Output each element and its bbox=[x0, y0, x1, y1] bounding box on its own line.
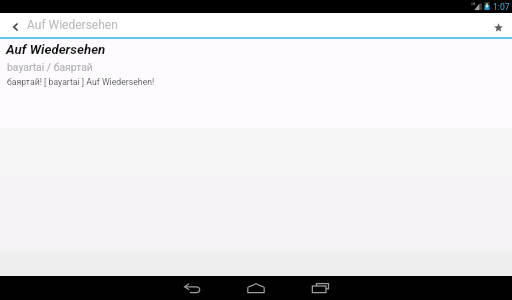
staticText: Auf Wiedersehen bbox=[27, 18, 118, 32]
staticText: Auf Wiedersehen bbox=[6, 42, 106, 58]
button[interactable]: Recent apps bbox=[288, 276, 352, 300]
button[interactable]: Back bbox=[160, 276, 224, 300]
staticText: 1:07 bbox=[493, 2, 510, 12]
staticText: bayartai / баяртай bbox=[7, 61, 93, 73]
button[interactable]: Bookmark bbox=[482, 13, 512, 37]
button[interactable]: Auf Wiedersehen bbox=[27, 13, 482, 37]
staticText: баяртай! [ bayartai ] Auf Wiedersehen! bbox=[7, 77, 155, 87]
button[interactable]: Home bbox=[224, 276, 288, 300]
button[interactable]: Back bbox=[0, 13, 27, 37]
